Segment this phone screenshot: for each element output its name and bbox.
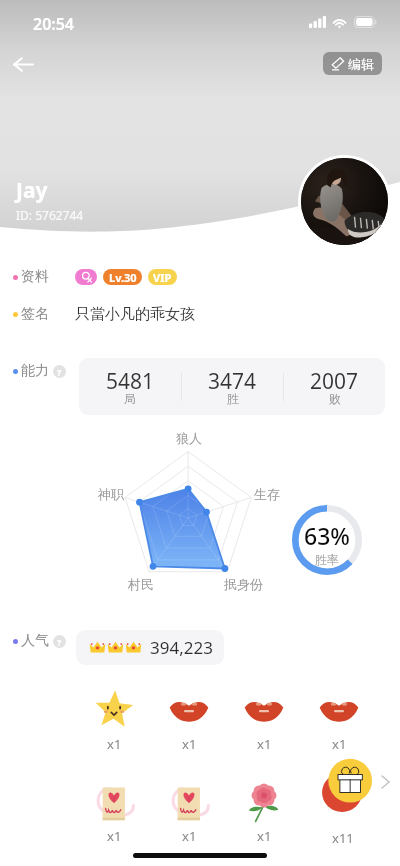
staticText: 败 <box>329 391 341 406</box>
staticText: 只當小凡的乖女孩 <box>75 305 195 324</box>
button[interactable]: Back <box>4 45 42 83</box>
button[interactable]: 2007 <box>284 358 385 415</box>
staticText: 狼人 <box>176 430 202 446</box>
staticText: ID: 5762744 <box>16 207 84 223</box>
staticText: 394,223 <box>150 636 213 659</box>
staticText: x1 <box>182 827 197 845</box>
staticText: 签名 <box>21 305 49 323</box>
staticText: x11 <box>332 829 354 847</box>
button[interactable]: Profile photo <box>298 155 391 248</box>
staticText: 63% <box>304 520 350 551</box>
staticText: 村民 <box>128 576 154 592</box>
staticText: 5481 <box>106 367 155 396</box>
staticText: x1 <box>257 827 272 845</box>
button[interactable]: x1 <box>82 687 146 753</box>
staticText: 编辑 <box>348 56 374 72</box>
staticText: x1 <box>332 735 347 753</box>
staticText: 局 <box>124 391 136 406</box>
staticText: 2007 <box>310 367 359 396</box>
button[interactable]: Gender: female <box>75 269 97 285</box>
staticText: 胜 <box>227 391 239 406</box>
button[interactable]: Lv.30 <box>103 269 142 285</box>
staticText: Jay <box>16 176 48 205</box>
button[interactable]: x1 <box>157 687 221 753</box>
button[interactable]: x1 <box>232 687 296 753</box>
button[interactable]: 编辑 <box>323 52 382 75</box>
staticText: 资料 <box>21 268 49 286</box>
button[interactable]: 394,223 <box>76 630 224 665</box>
button[interactable]: 5481 <box>79 358 181 415</box>
staticText: 胜率 <box>315 552 339 567</box>
button[interactable]: Help <box>53 365 66 378</box>
button[interactable]: x1 <box>157 780 221 845</box>
staticText: x1 <box>182 735 197 753</box>
staticText: 神职 <box>98 486 124 502</box>
button[interactable]: VIP <box>148 269 177 285</box>
staticText: ? <box>57 366 62 378</box>
button[interactable]: x11 <box>310 758 386 847</box>
staticText: 3474 <box>208 367 257 396</box>
staticText: 抿身份 <box>224 576 263 592</box>
button[interactable]: x1 <box>82 780 146 845</box>
staticText: ? <box>57 636 62 648</box>
staticText: Lv.30 <box>109 270 137 285</box>
button[interactable]: x1 <box>307 687 371 753</box>
staticText: x1 <box>107 735 122 753</box>
staticText: VIP <box>153 270 172 285</box>
staticText: 人气 <box>21 632 49 650</box>
staticText: x1 <box>257 735 272 753</box>
button[interactable]: Help <box>53 635 66 648</box>
staticText: 生存 <box>254 486 280 502</box>
button[interactable]: x1 <box>232 780 296 845</box>
staticText: 能力 <box>21 362 49 380</box>
staticText: 20:54 <box>33 13 75 35</box>
staticText: x1 <box>107 827 122 845</box>
button[interactable]: 3474 <box>182 358 283 415</box>
